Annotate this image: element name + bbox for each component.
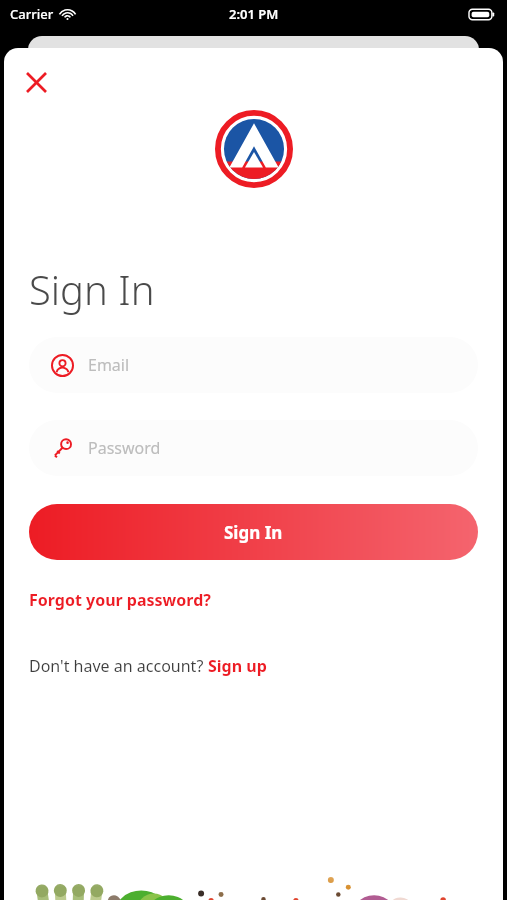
staticText: Forgot your password? [29, 589, 211, 611]
staticText: Sign up [208, 655, 267, 677]
staticText: Sign In [224, 521, 283, 544]
button[interactable]: Password [29, 420, 478, 476]
button[interactable]: Sign In [29, 504, 478, 560]
staticText: 2:01 PM [229, 5, 279, 23]
button[interactable]: Close [16, 62, 56, 102]
staticText: Email [88, 354, 130, 376]
button[interactable]: Sign up [208, 655, 267, 677]
staticText: Carrier [10, 5, 54, 23]
button[interactable]: Forgot your password? [29, 587, 211, 613]
staticText: Don't have an account? [29, 655, 208, 677]
staticText: Password [88, 437, 161, 459]
button[interactable]: Email [29, 337, 478, 393]
staticText: Sign In [29, 262, 155, 316]
